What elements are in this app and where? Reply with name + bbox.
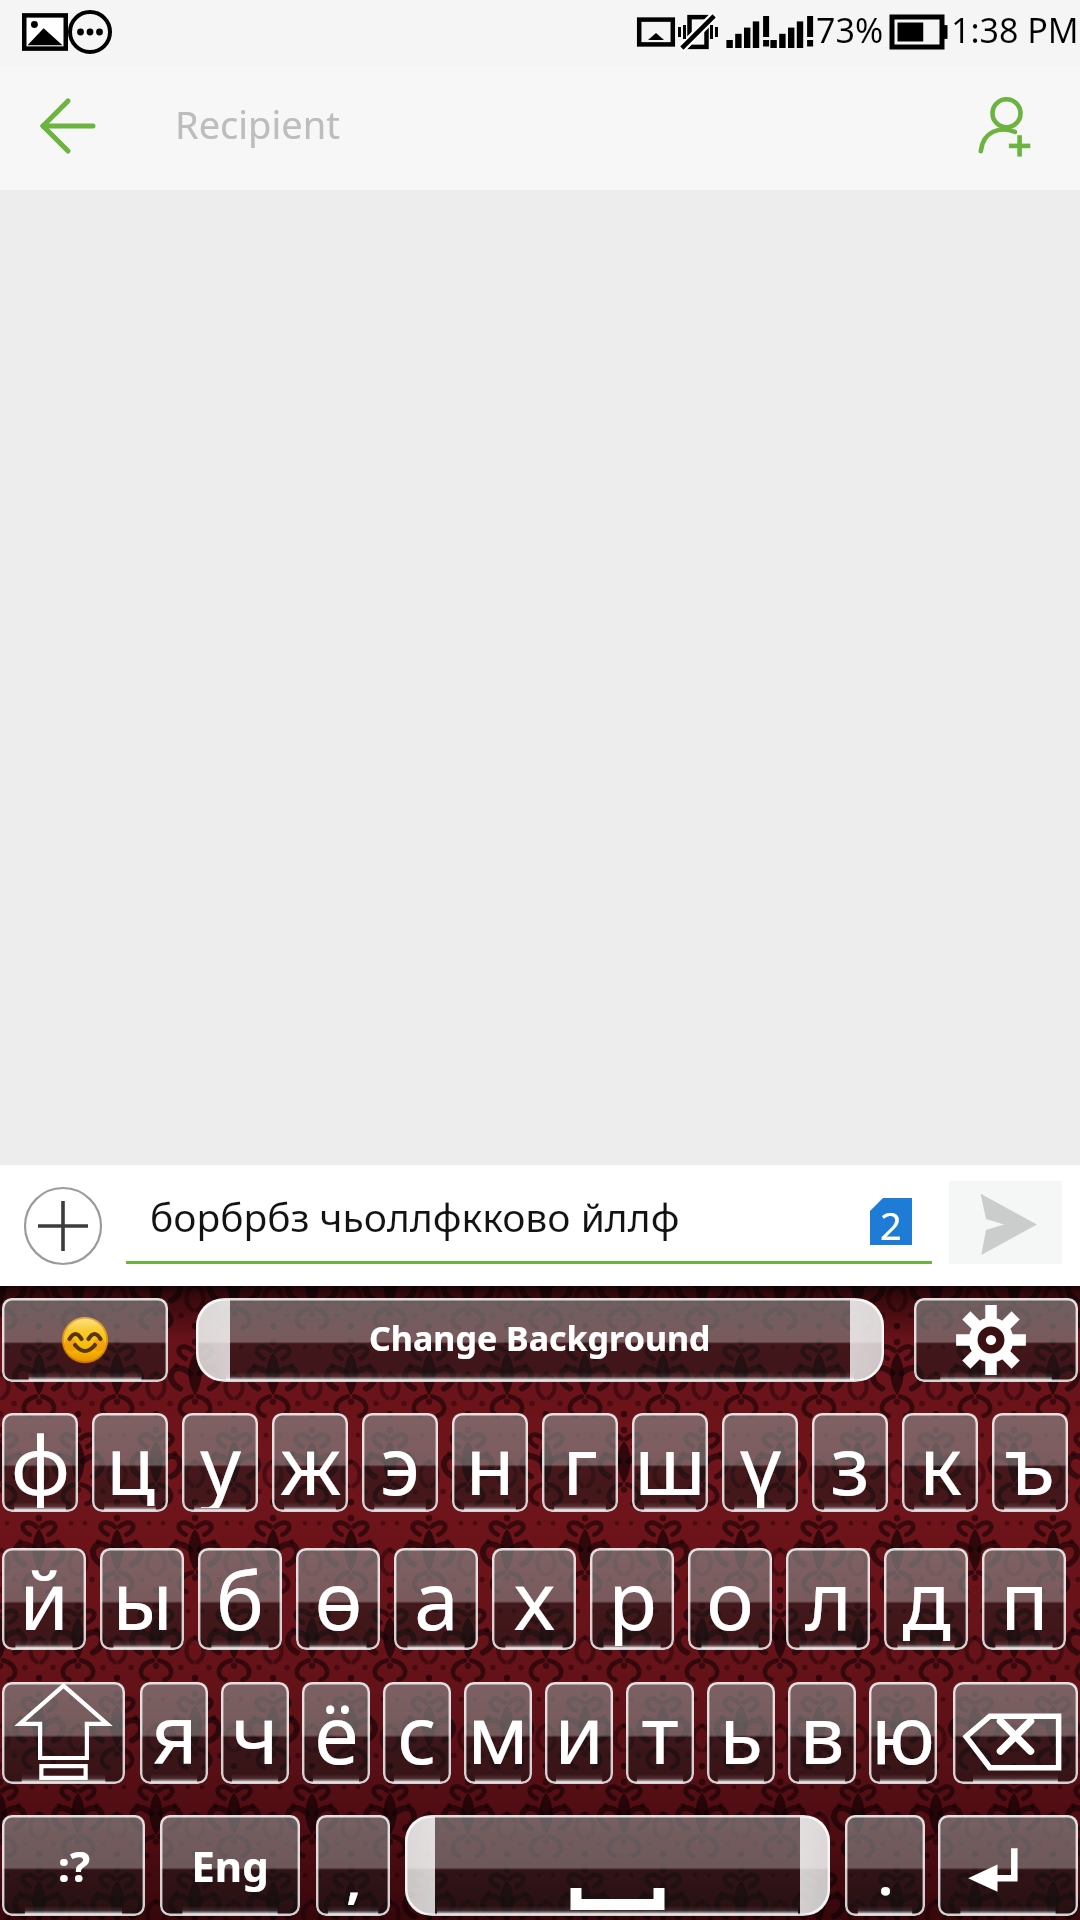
button[interactable]: ш xyxy=(632,1413,708,1512)
button[interactable]: д xyxy=(884,1548,968,1650)
staticText: о xyxy=(706,1548,754,1646)
button[interactable]: Enter xyxy=(938,1815,1078,1916)
staticText: ч xyxy=(231,1682,279,1780)
staticText: э xyxy=(380,1413,420,1508)
button[interactable]: Emoji xyxy=(2,1298,168,1382)
staticText: с xyxy=(397,1682,437,1780)
button[interactable]: и xyxy=(545,1682,613,1784)
button[interactable]: з xyxy=(812,1413,888,1512)
button[interactable]: в xyxy=(788,1682,856,1784)
button[interactable]: ы xyxy=(100,1548,184,1650)
staticText: ё xyxy=(314,1682,359,1780)
button[interactable]: Space xyxy=(405,1815,830,1916)
staticText: ь xyxy=(719,1682,763,1780)
staticText: 2 xyxy=(880,1199,902,1246)
staticText: р xyxy=(608,1548,657,1646)
staticText: ю xyxy=(871,1682,935,1780)
staticText: з xyxy=(830,1413,870,1508)
staticText: Eng xyxy=(191,1837,269,1894)
staticText: 1:38 PM xyxy=(951,7,1079,53)
staticText: борбрбз чьоллфкково йллф xyxy=(150,1190,680,1243)
staticText: ц xyxy=(106,1413,155,1508)
button[interactable]: . xyxy=(845,1815,925,1916)
staticText: . xyxy=(878,1842,893,1910)
staticText: ө xyxy=(314,1548,363,1646)
button[interactable]: н xyxy=(452,1413,528,1512)
button[interactable]: Attach xyxy=(23,1186,103,1266)
staticText: ү xyxy=(740,1413,781,1508)
button[interactable]: Shift xyxy=(2,1682,125,1784)
button[interactable]: к xyxy=(902,1413,978,1512)
button[interactable]: Eng xyxy=(160,1815,300,1916)
button[interactable]: ж xyxy=(272,1413,348,1512)
staticText: л xyxy=(805,1548,852,1646)
button[interactable]: ц xyxy=(92,1413,168,1512)
button[interactable]: а xyxy=(394,1548,478,1650)
staticText: к xyxy=(919,1413,962,1508)
staticText: п xyxy=(1000,1548,1049,1646)
button[interactable]: ё xyxy=(302,1682,370,1784)
button[interactable]: й xyxy=(2,1548,86,1650)
staticText: н xyxy=(465,1413,515,1508)
button[interactable]: ө xyxy=(296,1548,380,1650)
staticText: ъ xyxy=(1005,1413,1055,1508)
staticText: ж xyxy=(280,1413,341,1508)
button[interactable]: о xyxy=(688,1548,772,1650)
staticText: м xyxy=(467,1682,529,1780)
button[interactable]: я xyxy=(140,1682,208,1784)
button[interactable]: б xyxy=(198,1548,282,1650)
button[interactable]: ю xyxy=(869,1682,937,1784)
button[interactable]: ъ xyxy=(992,1413,1068,1512)
staticText: у xyxy=(200,1413,241,1508)
staticText: я xyxy=(151,1682,198,1780)
staticText: ф xyxy=(11,1413,70,1508)
button[interactable]: Send xyxy=(949,1181,1062,1264)
button[interactable]: с xyxy=(383,1682,451,1784)
staticText: :? xyxy=(58,1837,90,1894)
button[interactable]: э xyxy=(362,1413,438,1512)
staticText: в xyxy=(799,1682,845,1780)
staticText: а xyxy=(414,1548,459,1646)
button[interactable]: Add recipient xyxy=(950,66,1080,190)
staticText: т xyxy=(641,1682,679,1780)
button[interactable]: Settings xyxy=(914,1298,1078,1382)
staticText: й xyxy=(19,1548,69,1646)
button[interactable]: Change Background xyxy=(196,1298,884,1382)
button[interactable]: л xyxy=(786,1548,870,1650)
button[interactable]: , xyxy=(316,1815,390,1916)
button[interactable]: у xyxy=(182,1413,258,1512)
staticText: д xyxy=(902,1548,951,1646)
button[interactable]: ь xyxy=(707,1682,775,1784)
staticText: , xyxy=(346,1846,361,1914)
button[interactable]: Back xyxy=(0,66,130,190)
button[interactable]: р xyxy=(590,1548,674,1650)
button[interactable]: Backspace xyxy=(953,1682,1078,1784)
staticText: Change Background xyxy=(369,1315,711,1361)
staticText: ы xyxy=(112,1548,173,1646)
staticText: б xyxy=(216,1548,264,1646)
button[interactable]: п xyxy=(982,1548,1066,1650)
button[interactable]: ү xyxy=(722,1413,798,1512)
button[interactable]: :? xyxy=(2,1815,145,1916)
staticText: ш xyxy=(634,1413,706,1508)
button[interactable]: ф xyxy=(2,1413,78,1512)
button[interactable]: ч xyxy=(221,1682,289,1784)
staticText: х xyxy=(514,1548,555,1646)
button[interactable]: т xyxy=(626,1682,694,1784)
button[interactable]: г xyxy=(542,1413,618,1512)
staticText: г xyxy=(562,1413,598,1508)
staticText: и xyxy=(554,1682,604,1780)
button[interactable]: м xyxy=(464,1682,532,1784)
staticText: Recipient xyxy=(175,98,340,150)
button[interactable]: х xyxy=(492,1548,576,1650)
staticText: 73% xyxy=(816,7,884,53)
